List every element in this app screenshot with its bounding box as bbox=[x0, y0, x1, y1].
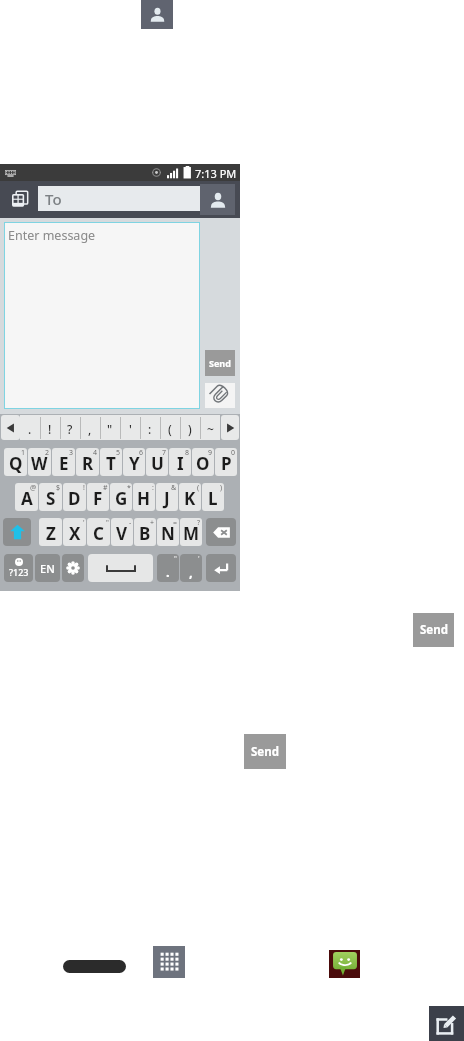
button[interactable]: Next bbox=[221, 415, 239, 440]
button[interactable]: Templates bbox=[12, 191, 28, 207]
button[interactable]: Home bbox=[63, 960, 126, 973]
staticText: ' bbox=[129, 421, 132, 437]
staticText: P bbox=[221, 452, 232, 475]
staticText: X bbox=[69, 522, 81, 545]
button[interactable]: ' bbox=[120, 415, 140, 440]
staticText: . bbox=[166, 563, 170, 581]
staticText: ! bbox=[48, 421, 52, 437]
staticText: M bbox=[183, 522, 200, 545]
button[interactable]: Apps bbox=[153, 946, 185, 978]
button[interactable]: Settings bbox=[62, 554, 84, 582]
button[interactable]: Backspace bbox=[206, 518, 236, 546]
staticText: @ bbox=[30, 483, 37, 493]
button[interactable]: ~ bbox=[200, 415, 220, 440]
button[interactable]: S bbox=[39, 483, 62, 511]
staticText: " bbox=[174, 554, 177, 564]
button[interactable]: Send bbox=[244, 734, 286, 769]
button[interactable]: H bbox=[133, 483, 155, 511]
button[interactable]: Send bbox=[205, 350, 235, 376]
staticText: V bbox=[116, 522, 128, 545]
button[interactable]: A bbox=[15, 483, 38, 511]
button[interactable]: X bbox=[63, 518, 86, 546]
button[interactable]: E bbox=[52, 448, 75, 476]
button[interactable]: Enter bbox=[206, 554, 236, 582]
button[interactable]: Q bbox=[4, 448, 27, 476]
staticText: 8 bbox=[185, 448, 190, 458]
staticText: ! bbox=[83, 483, 85, 493]
button[interactable]: W bbox=[28, 448, 51, 476]
button[interactable]: , bbox=[180, 554, 202, 582]
button[interactable]: . bbox=[157, 554, 179, 582]
button[interactable]: ?123 bbox=[4, 554, 33, 582]
button[interactable]: P bbox=[215, 448, 237, 476]
staticText: * bbox=[127, 483, 131, 493]
staticText: 5 bbox=[116, 448, 121, 458]
button[interactable]: R bbox=[76, 448, 99, 476]
staticText: W bbox=[31, 452, 48, 475]
staticText: B bbox=[139, 522, 151, 545]
staticText: J bbox=[164, 487, 170, 510]
button[interactable]: Contacts bbox=[141, 0, 173, 29]
staticText: = bbox=[173, 518, 178, 528]
staticText: ' bbox=[83, 518, 85, 528]
staticText: F bbox=[93, 487, 103, 510]
staticText: # bbox=[103, 483, 108, 493]
button[interactable]: N bbox=[157, 518, 179, 546]
button[interactable]: . bbox=[20, 415, 40, 440]
button[interactable]: Messaging bbox=[329, 950, 360, 978]
button[interactable]: New message bbox=[429, 1006, 464, 1041]
button[interactable]: U bbox=[146, 448, 168, 476]
button[interactable]: Send bbox=[413, 613, 454, 647]
staticText: R bbox=[82, 452, 94, 475]
staticText: K bbox=[184, 487, 196, 510]
staticText: ? bbox=[67, 421, 73, 437]
button[interactable]: O bbox=[192, 448, 214, 476]
button[interactable]: Shift bbox=[3, 518, 31, 546]
button[interactable]: ? bbox=[60, 415, 80, 440]
button[interactable]: EN bbox=[35, 554, 60, 582]
button[interactable]: : bbox=[140, 415, 160, 440]
staticText: ~ bbox=[207, 421, 214, 437]
staticText: & bbox=[171, 483, 177, 493]
staticText: : bbox=[152, 483, 154, 493]
staticText: ? bbox=[197, 518, 201, 528]
button[interactable]: Previous bbox=[1, 415, 20, 440]
button[interactable]: Space bbox=[88, 554, 153, 582]
button[interactable]: ) bbox=[180, 415, 200, 440]
button[interactable]: Z bbox=[39, 518, 62, 546]
staticText: 1 bbox=[21, 448, 26, 458]
staticText: U bbox=[151, 452, 164, 475]
button[interactable]: Enter message bbox=[4, 222, 200, 409]
button[interactable]: G bbox=[110, 483, 132, 511]
button[interactable]: L bbox=[202, 483, 224, 511]
staticText: ( bbox=[197, 483, 200, 493]
button[interactable]: " bbox=[100, 415, 120, 440]
button[interactable]: B bbox=[134, 518, 156, 546]
button[interactable]: ! bbox=[40, 415, 60, 440]
staticText: 7:13 PM bbox=[195, 166, 237, 181]
button[interactable]: Add contact bbox=[200, 184, 235, 215]
staticText: ( bbox=[168, 421, 172, 437]
button[interactable]: T bbox=[100, 448, 122, 476]
button[interactable]: To bbox=[38, 186, 200, 211]
staticText: L bbox=[208, 487, 218, 510]
button[interactable]: J bbox=[156, 483, 178, 511]
staticText: 4 bbox=[93, 448, 98, 458]
button[interactable]: I bbox=[169, 448, 191, 476]
button[interactable]: C bbox=[87, 518, 110, 546]
button[interactable]: V bbox=[111, 518, 133, 546]
button[interactable]: ( bbox=[160, 415, 180, 440]
staticText: " bbox=[106, 518, 109, 528]
button[interactable]: Attach bbox=[205, 383, 235, 408]
staticText: H bbox=[137, 487, 151, 510]
button[interactable]: Y bbox=[123, 448, 145, 476]
staticText: - bbox=[129, 518, 132, 528]
button[interactable]: , bbox=[80, 415, 100, 440]
button[interactable]: K bbox=[179, 483, 201, 511]
button[interactable]: D bbox=[63, 483, 86, 511]
staticText: 3 bbox=[69, 448, 74, 458]
button[interactable]: F bbox=[87, 483, 109, 511]
button[interactable]: M bbox=[180, 518, 202, 546]
staticText: E bbox=[59, 452, 69, 475]
staticText: O bbox=[196, 452, 210, 475]
